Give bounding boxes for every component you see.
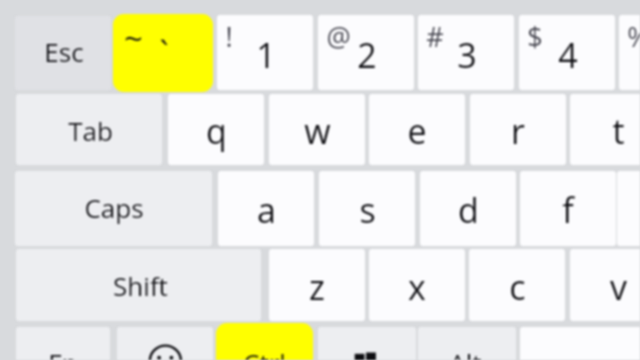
staticText: @ (326, 18, 351, 55)
staticText: c (509, 264, 526, 310)
button[interactable]: Ctrl (216, 323, 313, 360)
staticText: % (627, 18, 640, 55)
button[interactable]: d (420, 171, 516, 246)
staticText: ~ (124, 16, 143, 61)
staticText: 4 (558, 32, 578, 78)
staticText: $ (527, 18, 543, 55)
staticText: 3 (457, 32, 477, 78)
button[interactable] (617, 171, 640, 246)
button[interactable]: Windows (318, 327, 416, 360)
staticText: # (426, 18, 444, 55)
button[interactable]: z (269, 249, 365, 321)
staticText: v (610, 264, 627, 310)
button[interactable]: q (168, 94, 264, 165)
button[interactable]: Emoji (117, 327, 213, 360)
button[interactable]: x (369, 249, 465, 321)
button[interactable]: ~ (113, 14, 213, 92)
staticText: Ctrl (243, 345, 286, 360)
button[interactable]: Alt (418, 327, 516, 360)
button[interactable]: a (218, 171, 314, 246)
button[interactable]: @ (318, 15, 414, 90)
button[interactable]: Fn (16, 327, 110, 360)
button[interactable]: # (418, 15, 514, 90)
staticText: s (359, 187, 376, 233)
staticText: Esc (44, 34, 84, 69)
button[interactable]: v (570, 249, 640, 321)
staticText: ` (159, 30, 169, 76)
staticText: 2 (357, 32, 377, 78)
staticText: t (612, 108, 625, 154)
button[interactable]: e (369, 94, 465, 165)
staticText: d (458, 187, 479, 233)
button[interactable] (520, 327, 640, 360)
staticText: Tab (68, 113, 113, 148)
button[interactable]: c (469, 249, 565, 321)
button[interactable]: Tab (16, 94, 162, 165)
button[interactable]: Caps (15, 171, 212, 246)
staticText: z (309, 264, 325, 310)
staticText: x (408, 264, 426, 310)
button[interactable]: r (470, 94, 566, 165)
staticText: w (304, 108, 331, 154)
staticText: Shift (113, 268, 168, 303)
button[interactable]: f (520, 171, 616, 246)
button[interactable]: % (619, 15, 640, 90)
staticText: Caps (84, 190, 144, 225)
staticText: Fn (48, 345, 78, 360)
button[interactable]: Esc (15, 16, 111, 90)
staticText: e (407, 108, 427, 154)
staticText: r (511, 108, 525, 154)
staticText: 1 (256, 32, 276, 78)
button[interactable]: ! (217, 15, 313, 90)
staticText: ! (225, 18, 233, 55)
staticText: q (206, 108, 227, 154)
button[interactable]: t (570, 94, 640, 165)
button[interactable]: w (269, 94, 365, 165)
staticText: Alt (449, 345, 482, 360)
staticText: f (562, 187, 574, 233)
staticText: a (257, 187, 276, 233)
button[interactable]: s (319, 171, 415, 246)
button[interactable]: Shift (16, 249, 261, 321)
button[interactable]: $ (519, 15, 615, 90)
